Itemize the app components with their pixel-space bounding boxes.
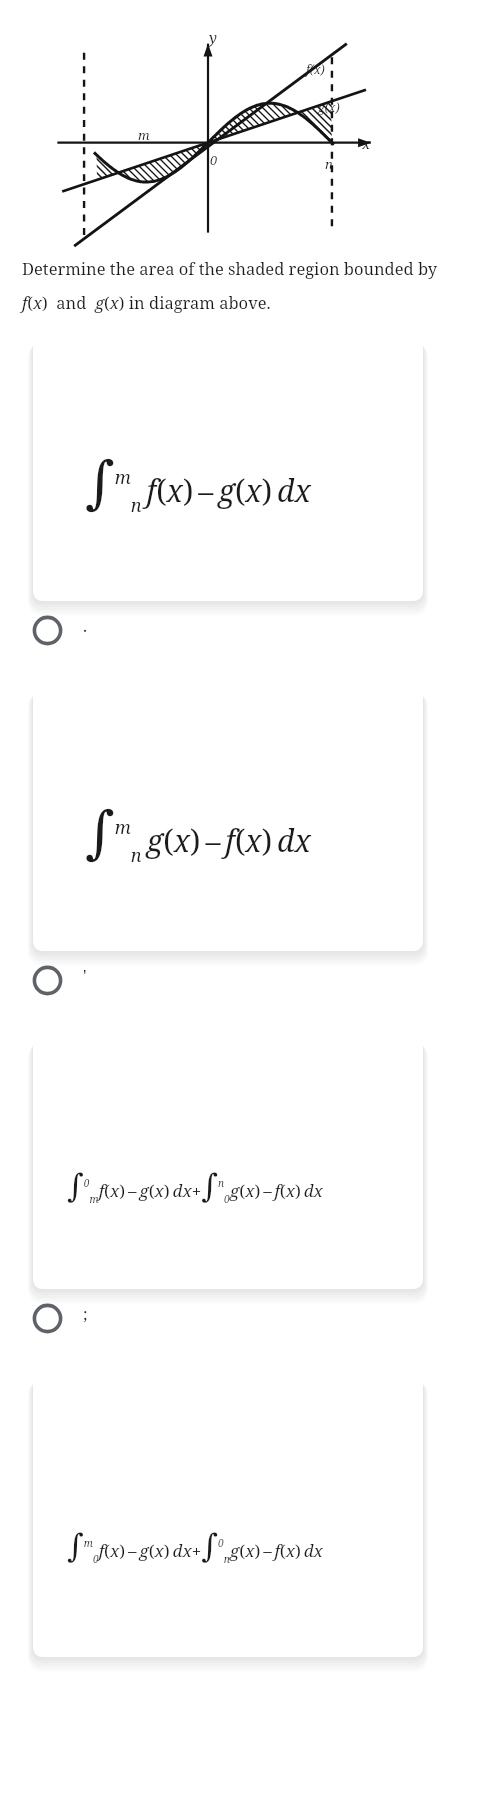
staticText: ∫m0f(x) – g(x) dx+∫0ng(x) – f(x) dx [67,1527,323,1566]
staticText: ∫mn g(x) – f(x) dx [85,799,311,868]
other: Select this answer [32,965,63,996]
button[interactable]: ∫mn f(x) – g(x) dx [33,339,423,601]
staticText: m [138,126,150,144]
staticText: n [325,155,333,173]
other: Select this answer [32,1303,63,1334]
staticText: ' [83,965,87,987]
staticText: ∫mn f(x) – g(x) dx [85,449,311,518]
button[interactable]: ∫m0f(x) – g(x) dx+∫0ng(x) – f(x) dx [33,1377,423,1657]
staticText: f(x) [306,61,325,77]
staticText: ; [83,1303,88,1325]
button[interactable]: ∫0mf(x) – g(x) dx+∫n0g(x) – f(x) dx [33,1039,423,1289]
staticText: 0 [210,151,218,169]
staticText: y [209,27,217,47]
button[interactable]: ∫mn g(x) – f(x) dx [33,689,423,951]
staticText: g(x) [318,99,340,115]
staticText: ∫0mf(x) – g(x) dx+∫n0g(x) – f(x) dx [67,1167,323,1206]
staticText: Determine the area of the shaded region … [22,257,438,279]
button[interactable]: Select this answer [0,1289,486,1377]
button[interactable]: Select this answer [0,951,486,1039]
staticText: x [362,133,371,153]
other: Select this answer [32,615,63,646]
staticText: f(x) and g(x) in diagram above. [22,291,271,313]
button[interactable]: Select this answer [0,601,486,689]
staticText: . [83,615,88,637]
